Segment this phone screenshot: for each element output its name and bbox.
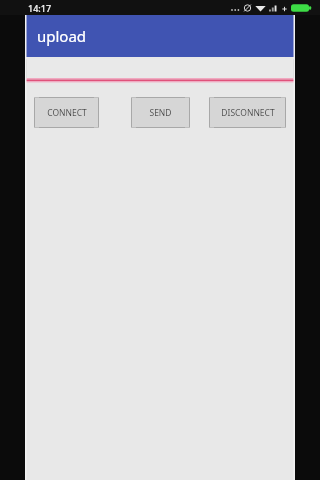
button[interactable]: CONNECT: [34, 97, 99, 128]
button[interactable]: DISCONNECT: [209, 97, 286, 128]
staticText: 14:17: [28, 2, 52, 14]
staticText: upload: [37, 26, 87, 46]
button[interactable]: [25, 59, 295, 83]
button[interactable]: SEND: [131, 97, 190, 128]
staticText: DISCONNECT: [221, 107, 275, 119]
staticText: CONNECT: [47, 107, 87, 119]
staticText: SEND: [149, 107, 172, 119]
